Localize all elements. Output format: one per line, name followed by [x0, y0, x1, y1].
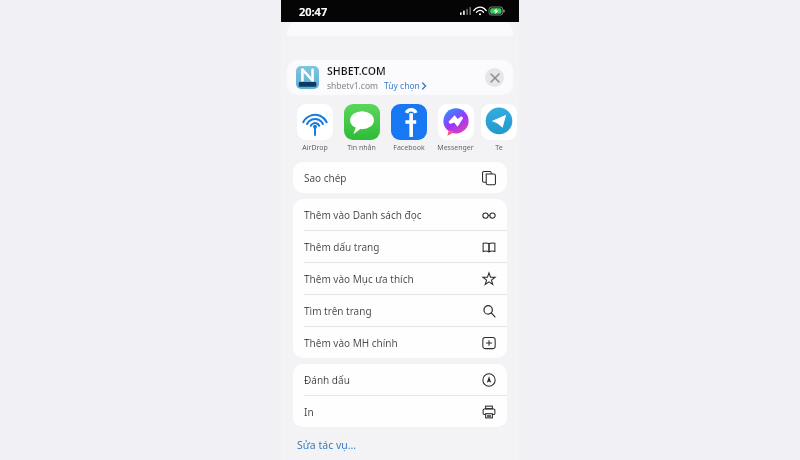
button[interactable]: Sửa tác vụ...: [281, 434, 519, 456]
staticText: SHBET.COM: [327, 64, 386, 78]
staticText: Tin nhắn: [347, 143, 376, 153]
staticText: Sửa tác vụ...: [297, 438, 357, 452]
button[interactable]: Thêm vào Danh sách đọc: [293, 199, 507, 230]
staticText: Thêm vào MH chính: [304, 336, 482, 350]
staticText: Sao chép: [304, 171, 482, 185]
button[interactable]: Te: [479, 104, 519, 153]
staticText: Facebook: [393, 143, 425, 153]
button[interactable]: AirDrop: [291, 104, 338, 153]
button[interactable]: Tin nhắn: [338, 104, 385, 153]
staticText: AirDrop: [302, 143, 328, 153]
staticText: Thêm vào Mục ưa thích: [304, 272, 482, 286]
button[interactable]: Thêm dấu trang: [293, 231, 507, 262]
button[interactable]: In: [293, 396, 507, 427]
button[interactable]: Thêm vào Mục ưa thích: [293, 263, 507, 294]
staticText: Thêm dấu trang: [304, 240, 482, 254]
staticText: Te: [495, 143, 503, 153]
staticText: Tìm trên trang: [304, 304, 482, 318]
staticText: Đánh dấu: [304, 373, 482, 387]
staticText: shbetv1.com: [327, 80, 379, 92]
staticText: Tùy chọn: [384, 80, 420, 92]
button[interactable]: Sao chép: [293, 162, 507, 193]
button[interactable]: Tìm trên trang: [293, 295, 507, 326]
button[interactable]: Tùy chọn: [384, 80, 426, 92]
button[interactable]: Close: [485, 68, 504, 87]
staticText: In: [304, 405, 482, 419]
staticText: Messenger: [437, 143, 474, 153]
staticText: Thêm vào Danh sách đọc: [304, 208, 482, 222]
button[interactable]: Thêm vào MH chính: [293, 327, 507, 358]
button[interactable]: Messenger: [432, 104, 479, 153]
staticText: 20:47: [299, 4, 328, 19]
button[interactable]: Facebook: [385, 104, 432, 153]
button[interactable]: Đánh dấu: [293, 364, 507, 395]
